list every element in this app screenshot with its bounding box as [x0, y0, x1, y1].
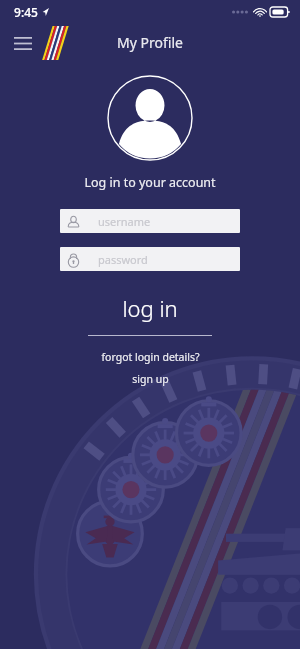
button[interactable]: log in: [0, 293, 300, 323]
staticText: password: [98, 252, 148, 267]
staticText: username: [98, 214, 151, 229]
button[interactable]: password: [60, 247, 240, 271]
staticText: 9:45: [14, 4, 38, 20]
staticText: Log in to your account: [84, 174, 216, 191]
button[interactable]: sign up: [0, 372, 300, 386]
button[interactable]: Open navigation menu: [10, 30, 36, 56]
staticText: log in: [122, 293, 178, 323]
button[interactable]: The Tank Trainer logo: [38, 26, 64, 60]
staticText: sign up: [132, 372, 169, 386]
button[interactable]: username: [60, 209, 240, 233]
button[interactable]: forgot login details?: [0, 350, 300, 364]
staticText: forgot login details?: [101, 350, 200, 364]
staticText: My Profile: [117, 33, 183, 52]
